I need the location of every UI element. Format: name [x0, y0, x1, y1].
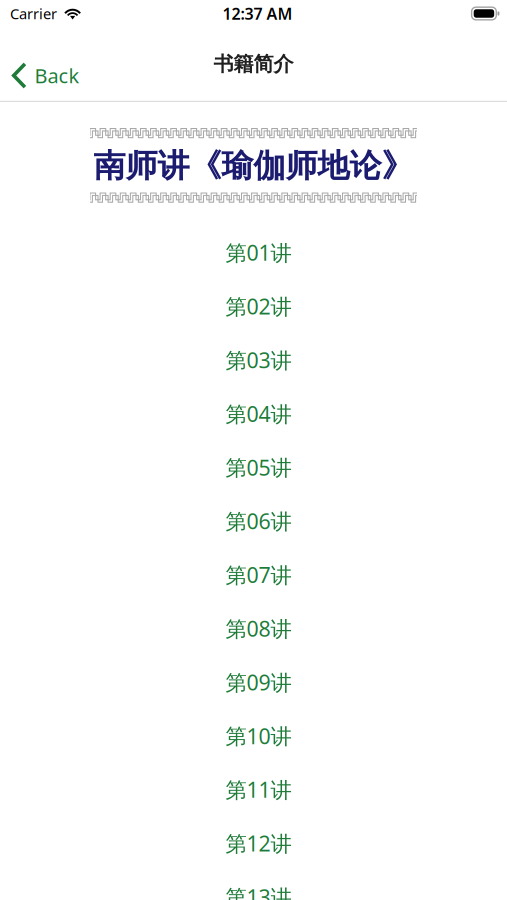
- button[interactable]: 第12讲: [10, 816, 507, 870]
- button[interactable]: 第06讲: [10, 494, 507, 548]
- staticText: 第07讲: [225, 561, 291, 589]
- staticText: 第13讲: [225, 883, 291, 900]
- button[interactable]: 第09讲: [10, 655, 507, 709]
- button[interactable]: 第03讲: [10, 333, 507, 387]
- staticText: 第10讲: [225, 722, 291, 750]
- button[interactable]: 第02讲: [10, 279, 507, 333]
- staticText: 第01讲: [225, 238, 291, 267]
- button[interactable]: 第01讲: [10, 226, 507, 279]
- staticText: 第09讲: [225, 668, 291, 696]
- staticText: 第03讲: [225, 346, 291, 374]
- button[interactable]: 第11讲: [10, 763, 507, 816]
- button[interactable]: 第04讲: [10, 387, 507, 440]
- staticText: 南师讲《瑜伽师地论》: [93, 146, 413, 185]
- button[interactable]: 第07讲: [10, 548, 507, 602]
- button[interactable]: 第10讲: [10, 709, 507, 763]
- staticText: Carrier: [10, 4, 57, 23]
- button[interactable]: 第08讲: [10, 602, 507, 655]
- staticText: 第05讲: [225, 453, 291, 481]
- staticText: 第08讲: [225, 614, 291, 643]
- staticText: 第11讲: [225, 775, 291, 804]
- button[interactable]: 第13讲: [10, 870, 507, 900]
- staticText: 书籍简介: [213, 52, 293, 76]
- staticText: 第04讲: [225, 399, 291, 428]
- staticText: 12:37 AM: [222, 3, 292, 24]
- button[interactable]: Back: [0, 53, 93, 97]
- staticText: Back: [34, 62, 79, 89]
- staticText: 第06讲: [225, 507, 291, 535]
- staticText: 第02讲: [225, 292, 291, 320]
- staticText: 第12讲: [225, 829, 291, 857]
- button[interactable]: 第05讲: [10, 440, 507, 494]
